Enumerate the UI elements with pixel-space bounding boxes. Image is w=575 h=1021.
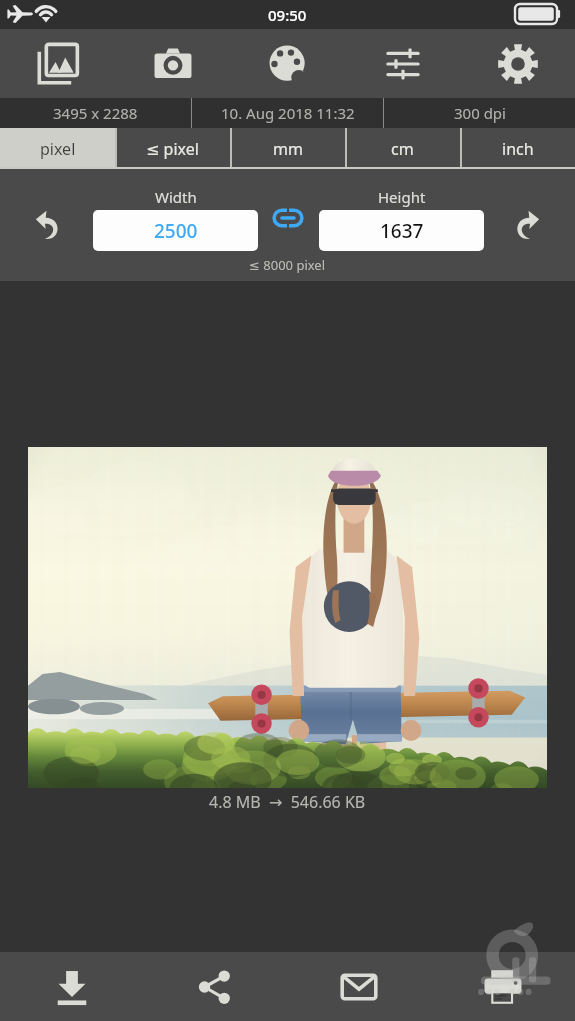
staticText: 1637 bbox=[380, 218, 424, 244]
button[interactable]: Preview image bbox=[28, 447, 547, 788]
staticText: Height bbox=[378, 187, 426, 207]
button[interactable]: 2500 bbox=[93, 210, 258, 251]
button[interactable]: Undo bbox=[22, 197, 74, 249]
button[interactable]: Adjust bbox=[345, 29, 460, 98]
button[interactable]: 1637 bbox=[319, 210, 484, 251]
staticText: 3495 x 2288 bbox=[53, 103, 138, 123]
staticText: 300 dpi bbox=[454, 103, 506, 123]
staticText: 09:50 bbox=[268, 5, 307, 25]
button[interactable]: Palette bbox=[230, 29, 345, 98]
button[interactable]: Print bbox=[431, 952, 575, 1021]
button[interactable]: mm bbox=[230, 128, 345, 169]
button[interactable]: pixel bbox=[0, 128, 115, 169]
button[interactable]: Link width and height bbox=[263, 196, 313, 240]
staticText: mm bbox=[273, 138, 303, 160]
staticText: 10. Aug 2018 11:32 bbox=[221, 103, 355, 123]
staticText: inch bbox=[502, 138, 534, 160]
staticText: ≤ pixel bbox=[146, 138, 199, 160]
staticText: 4.8 MB → 546.66 KB bbox=[209, 791, 366, 813]
staticText: pixel bbox=[40, 138, 76, 160]
button[interactable]: ≤ pixel bbox=[115, 128, 230, 169]
button[interactable]: Settings bbox=[460, 29, 575, 98]
staticText: Width bbox=[155, 187, 197, 207]
button[interactable]: cm bbox=[345, 128, 460, 169]
button[interactable]: inch bbox=[460, 128, 575, 169]
button[interactable]: Gallery bbox=[0, 29, 115, 98]
staticText: 2500 bbox=[154, 218, 198, 244]
staticText: ≤ 8000 pixel bbox=[249, 256, 326, 274]
button[interactable]: Email bbox=[287, 952, 431, 1021]
button[interactable]: Redo bbox=[501, 197, 553, 249]
button[interactable]: Share bbox=[143, 952, 287, 1021]
button[interactable]: Camera bbox=[115, 29, 230, 98]
button[interactable]: Save bbox=[0, 952, 143, 1021]
staticText: cm bbox=[391, 138, 414, 160]
